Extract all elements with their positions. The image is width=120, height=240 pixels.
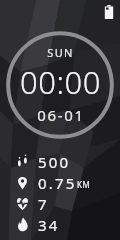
staticText: SUN [47, 45, 74, 60]
button[interactable]: Time and date [6, 31, 114, 139]
staticText: 7 [38, 194, 49, 214]
button[interactable]: Steps [0, 151, 71, 172]
button[interactable]: Distance [0, 172, 91, 193]
staticText: 06-01 [37, 105, 85, 125]
staticText: 500 [38, 152, 71, 172]
staticText: 0.75 [38, 173, 77, 193]
staticText: 00:00 [20, 61, 101, 103]
button[interactable]: Calories [0, 214, 60, 235]
button[interactable]: Battery [104, 5, 114, 19]
staticText: 34 [38, 215, 60, 235]
button[interactable]: Heart rate [0, 193, 49, 214]
staticText: KM [77, 179, 91, 190]
